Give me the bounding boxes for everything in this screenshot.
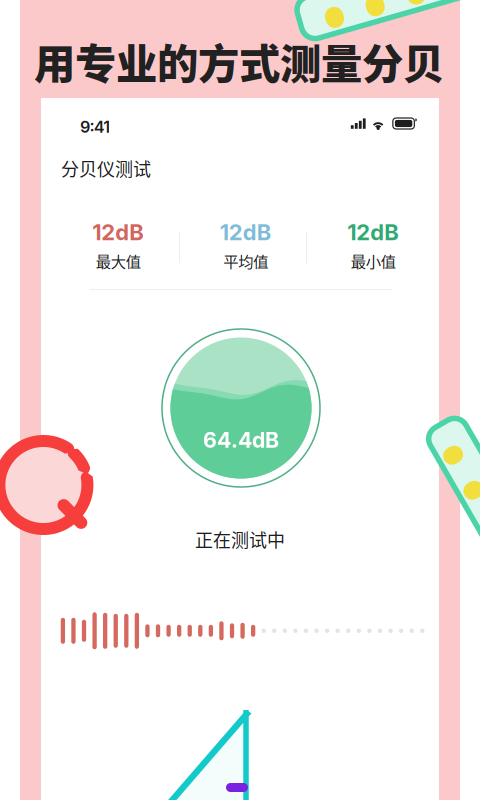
staticText: 12dB	[220, 219, 272, 246]
staticText: 12dB	[347, 219, 399, 246]
staticText: 64.4dB	[203, 427, 279, 453]
staticText: 9:41	[80, 117, 110, 137]
staticText: 最大值	[96, 250, 141, 272]
staticText: 最小值	[351, 250, 396, 272]
staticText: 正在测试中	[195, 526, 285, 552]
staticText: 平均值	[223, 250, 268, 272]
staticText: 分贝仪测试	[61, 155, 151, 181]
staticText: 用专业的方式测量分贝	[34, 31, 444, 91]
staticText: 12dB	[92, 219, 144, 246]
